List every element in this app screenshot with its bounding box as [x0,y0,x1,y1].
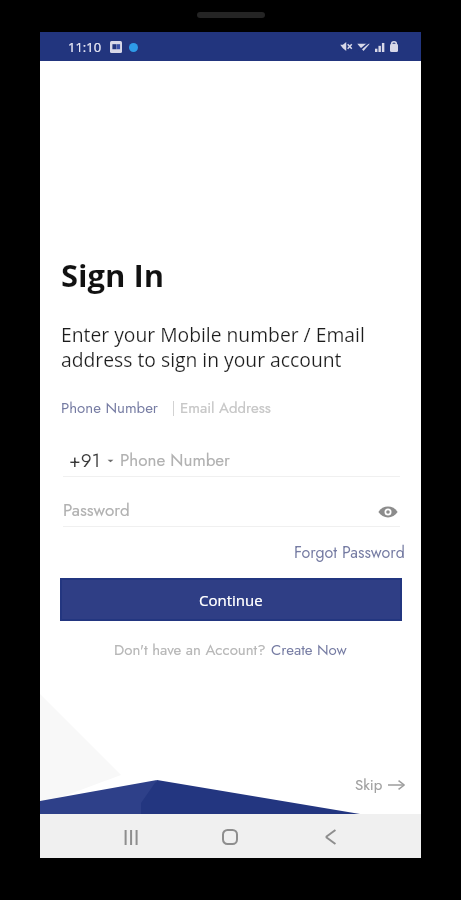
button[interactable]: Phone Number [61,394,159,422]
staticText: Create Now [271,639,347,661]
staticText: Phone Number [61,397,159,419]
staticText: Enter your Mobile number / Email address… [61,321,365,372]
button[interactable]: Home [200,816,260,858]
staticText: +91 [69,447,101,474]
button[interactable]: Continue [62,580,400,619]
staticText: Phone Number [120,448,230,473]
button[interactable]: Back [300,816,360,858]
staticText: Sign In [61,254,165,296]
button[interactable]: Skip [355,771,405,799]
staticText: Continue [199,590,263,610]
staticText: Email Address [180,397,271,419]
button[interactable]: Create Now [271,639,347,661]
staticText: Don't have an Account? [114,639,271,661]
button[interactable]: +91 [69,447,114,474]
staticText: Password [63,498,130,523]
button[interactable]: Recent apps [101,816,161,858]
button[interactable]: Forgot Password [294,538,405,567]
staticText: Forgot Password [294,541,405,564]
staticText: 11:10 [68,38,102,56]
staticText: Skip [355,774,383,796]
button[interactable]: Show password [375,499,401,525]
button[interactable]: Email Address [180,394,271,422]
